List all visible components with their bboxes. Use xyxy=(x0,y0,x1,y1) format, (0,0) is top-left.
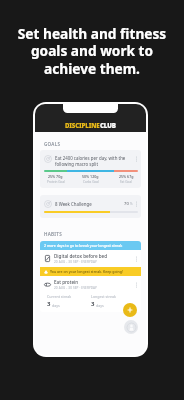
staticText: 25% 70g xyxy=(48,174,63,179)
button[interactable]: 8 Week Challenge xyxy=(40,195,141,218)
staticText: Set health and fitness goals and work to… xyxy=(8,24,176,78)
button[interactable]: Digital detox before bed xyxy=(40,250,141,267)
staticText: 20 AUG - 30 SEP · EVERYDAY xyxy=(54,260,97,264)
staticText: CLUB xyxy=(100,121,116,129)
staticText: GOALS xyxy=(44,141,61,147)
staticText: HABITS xyxy=(44,231,62,237)
staticText: You are on your longest streak. Keep goi… xyxy=(50,269,123,274)
button[interactable]: 2 more days to go to break your longest … xyxy=(40,241,141,250)
staticText: Protein Goal xyxy=(47,180,65,184)
staticText: 50% 120g xyxy=(82,174,99,179)
staticText: Longest streak xyxy=(91,294,116,299)
button[interactable]: Eat 2400 calories per day, with the foll… xyxy=(40,150,141,188)
button[interactable]: Add habit xyxy=(123,303,137,317)
staticText: Carbs Goal xyxy=(83,180,99,184)
button[interactable]: You are on your longest streak. Keep goi… xyxy=(40,267,141,276)
staticText: % xyxy=(130,202,133,206)
staticText: Fat Goal xyxy=(120,180,132,184)
staticText: Digital detox before bed xyxy=(54,253,108,259)
staticText: days xyxy=(52,303,60,308)
staticText: 3 xyxy=(47,300,51,308)
button[interactable]: Eat protein xyxy=(40,276,141,293)
staticText: Current streak xyxy=(47,294,72,299)
staticText: 70 xyxy=(124,201,129,207)
staticText: 8 Week Challenge xyxy=(55,201,124,207)
staticText: 25% 67g xyxy=(119,174,134,179)
staticText: Eat 2400 calories per day, with the foll… xyxy=(55,155,133,167)
staticText: 20 AUG - 30 SEP · EVERYDAY xyxy=(54,286,97,290)
staticText: 3 xyxy=(91,300,95,308)
staticText: Eat protein xyxy=(54,279,79,285)
staticText: days xyxy=(96,303,104,308)
staticText: DISCIPLINE xyxy=(65,121,100,129)
staticText: 2 more days to go to break your longest … xyxy=(44,243,123,248)
